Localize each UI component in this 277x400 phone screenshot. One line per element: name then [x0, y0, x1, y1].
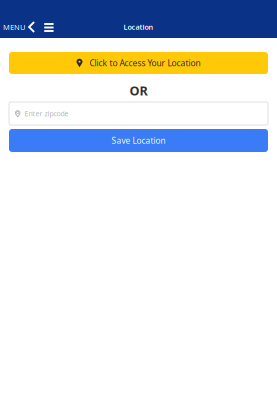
staticText: Click to Access Your Location [89, 57, 200, 69]
staticText: MENU [3, 22, 25, 32]
button[interactable]: Enter zipcode [9, 102, 268, 125]
staticText: Save Location [111, 135, 165, 146]
staticText: Enter zipcode [24, 109, 68, 118]
staticText: OR [129, 82, 147, 99]
button[interactable]: MENU [0, 16, 35, 38]
button[interactable]: Click to Access Your Location [9, 52, 268, 74]
button[interactable]: Menu [35, 16, 62, 38]
staticText: Location [123, 22, 153, 32]
button[interactable]: Save Location [9, 129, 268, 152]
